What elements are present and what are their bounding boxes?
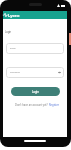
staticText: Login xyxy=(32,90,39,94)
staticText: Login xyxy=(5,30,12,34)
button[interactable]: Register xyxy=(49,103,60,107)
staticText: Register xyxy=(49,103,60,107)
button[interactable]: Login xyxy=(11,87,60,96)
staticText: Don't have an account yet? xyxy=(15,103,48,107)
other: Show password xyxy=(58,71,61,74)
staticText: Lyceo xyxy=(8,13,20,18)
button[interactable]: Email xyxy=(6,43,64,54)
button[interactable]: Password xyxy=(6,67,64,78)
staticText: Email xyxy=(10,47,16,50)
staticText: Password xyxy=(10,71,20,74)
